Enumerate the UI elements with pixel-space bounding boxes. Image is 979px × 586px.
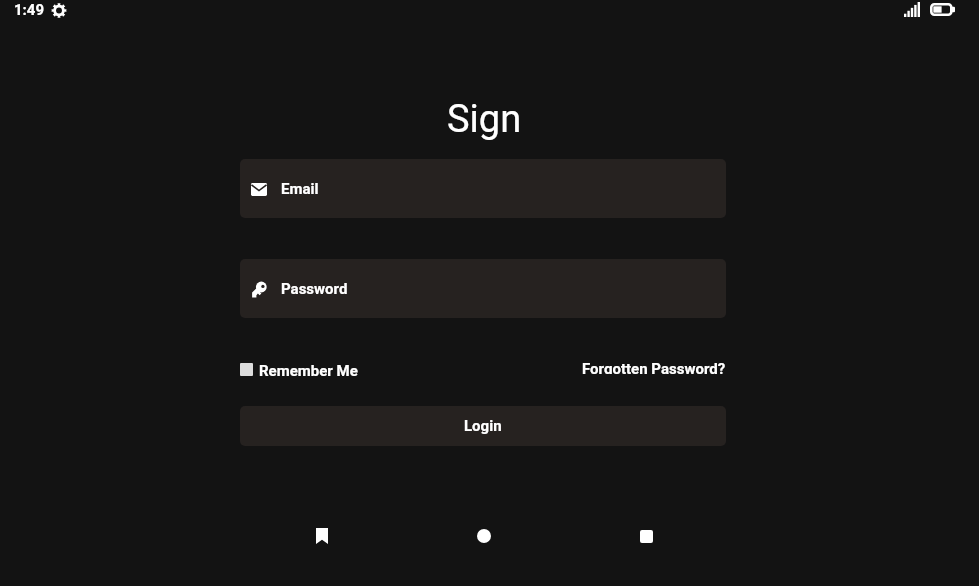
staticText: Email	[281, 180, 319, 198]
button[interactable]: Remember Me	[240, 353, 358, 379]
staticText: Sign	[447, 97, 522, 142]
staticText: Password	[281, 280, 348, 298]
button[interactable]: Password	[240, 259, 726, 318]
button[interactable]: Login	[240, 406, 726, 446]
staticText: Forgotten Password?	[582, 360, 726, 374]
button[interactable]: Back	[307, 521, 337, 551]
staticText: 1:49	[14, 1, 45, 19]
button[interactable]: Home	[469, 521, 499, 551]
staticText: Remember Me	[259, 362, 358, 376]
button[interactable]: Recent apps	[631, 521, 661, 551]
staticText: Login	[464, 417, 502, 435]
button[interactable]: Forgotten Password?	[582, 354, 726, 380]
button[interactable]: Settings	[47, 0, 71, 21]
button[interactable]: Email	[240, 159, 726, 218]
